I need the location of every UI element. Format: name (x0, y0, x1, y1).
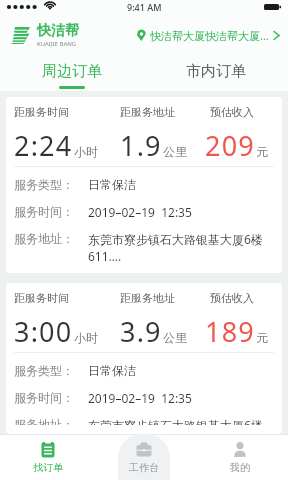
staticText: 预估收入 (210, 291, 254, 305)
button[interactable]: 距服务时间 (6, 283, 282, 434)
staticText: 服务时间： (14, 204, 88, 219)
staticText: 元 (256, 144, 268, 159)
staticText: 东莞市寮步镇石大路银基大厦6楼 (88, 231, 263, 247)
staticText: 找订单 (33, 461, 63, 474)
staticText: 611…. (88, 248, 122, 264)
button[interactable]: 快洁帮大厦快洁帮大厦… (136, 28, 280, 43)
button[interactable]: 工作台 (96, 434, 192, 480)
button[interactable]: 市内订单 (144, 56, 288, 91)
staticText: 距服务地址 (120, 105, 175, 119)
staticText: 日常保洁 (88, 177, 136, 192)
staticText: 2019–02–19 12:35 (88, 390, 192, 406)
button[interactable]: 找订单 (0, 434, 96, 480)
staticText: 2019–02–19 12:35 (88, 204, 192, 220)
staticText: 服务类型： (14, 363, 88, 378)
staticText: 服务地址： (14, 417, 88, 425)
staticText: 工作台 (129, 461, 159, 474)
staticText: 我的 (230, 461, 250, 474)
staticText: 距服务时间 (14, 105, 69, 119)
staticText: 209 (205, 127, 255, 164)
staticText: 日常保洁 (88, 363, 136, 378)
staticText: 小时 (74, 144, 98, 159)
staticText: 小时 (74, 330, 98, 345)
button[interactable]: 距服务时间 (6, 97, 282, 273)
staticText: 快洁帮 (37, 22, 79, 40)
staticText: 预估收入 (210, 105, 254, 119)
staticText: 元 (256, 330, 268, 345)
staticText: 公里 (163, 330, 187, 345)
button[interactable]: 周边订单 (0, 56, 144, 91)
staticText: 服务类型： (14, 177, 88, 192)
staticText: 9:41 AM (127, 1, 162, 13)
staticText: 2:24 (14, 127, 73, 164)
staticText: 距服务时间 (14, 291, 69, 305)
staticText: 1.9 (120, 127, 162, 164)
staticText: 3:00 (14, 313, 73, 350)
staticText: 公里 (163, 144, 187, 159)
staticText: 东莞市寮步镇石大路银基大厦6楼 (88, 417, 263, 425)
staticText: 周边订单 (42, 62, 102, 81)
staticText: 服务时间： (14, 390, 88, 405)
staticText: 服务地址： (14, 231, 88, 246)
staticText: 快洁帮大厦快洁帮大厦… (150, 28, 269, 43)
staticText: KUAIJIE BANG (37, 40, 77, 48)
staticText: 市内订单 (186, 62, 246, 81)
staticText: 3.9 (120, 313, 162, 350)
button[interactable]: 我的 (192, 434, 288, 480)
staticText: 189 (205, 313, 255, 350)
staticText: 距服务地址 (120, 291, 175, 305)
